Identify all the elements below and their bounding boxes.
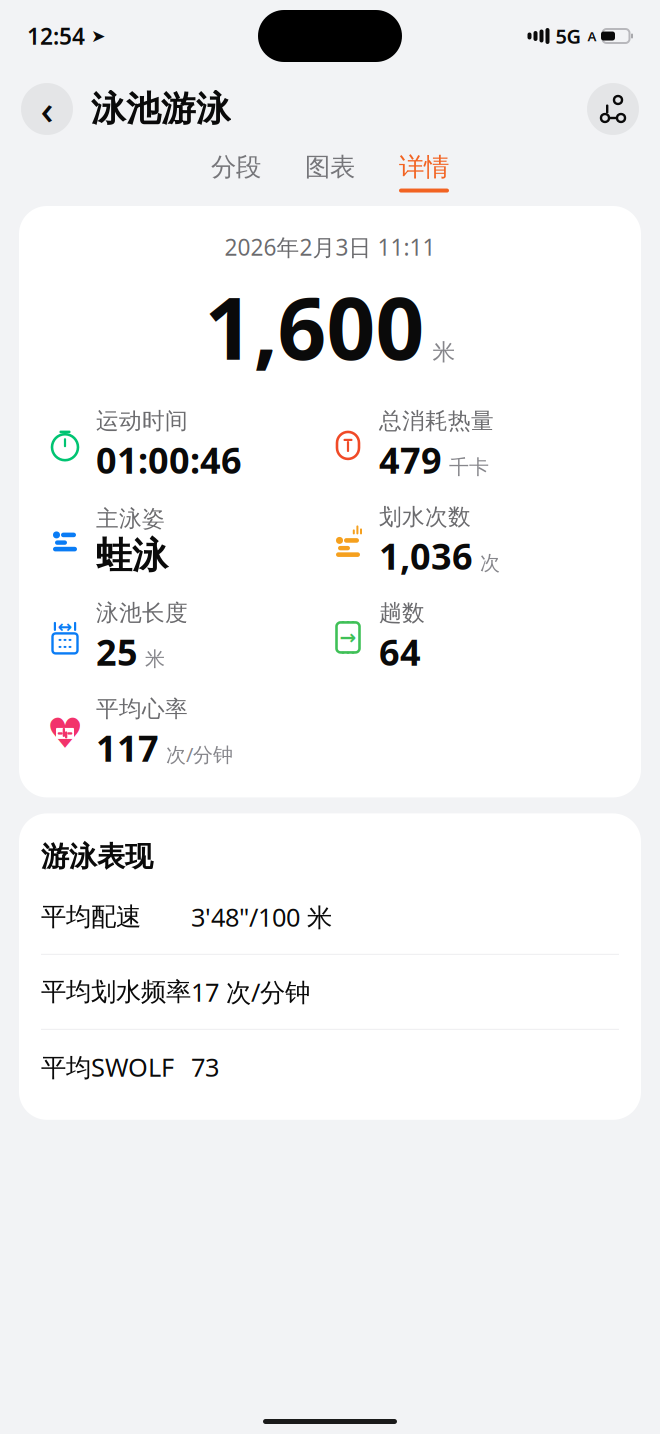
staticText: 趟数 — [379, 599, 425, 627]
button[interactable]: 分段 — [205, 151, 267, 192]
staticText: ➤ — [91, 26, 106, 46]
staticText: 117 — [96, 724, 159, 772]
staticText: 平均心率 — [96, 695, 188, 723]
staticText: 游泳表现 — [41, 839, 153, 874]
staticText: ↔ — [57, 617, 72, 636]
staticText: 12:54 — [27, 21, 85, 51]
staticText: 17 次/分钟 — [191, 975, 310, 1009]
button[interactable]: 分享 — [587, 83, 639, 135]
staticText: 64 — [379, 628, 421, 676]
staticText: 运动时间 — [96, 407, 188, 435]
staticText: 479 — [379, 436, 442, 484]
staticText: → — [339, 626, 356, 649]
staticText: 千卡 — [449, 455, 489, 479]
staticText: 平均SWOLF — [41, 1050, 174, 1084]
staticText: 1,036 — [379, 532, 473, 580]
staticText: ‹ — [40, 82, 53, 135]
staticText: 详情 — [399, 151, 449, 182]
staticText: 蛙泳 — [96, 534, 168, 578]
staticText: 主泳姿 — [96, 505, 165, 533]
staticText: 平均配速 — [41, 901, 141, 932]
staticText: 01:00:46 — [96, 436, 242, 484]
staticText: 泳池游泳 — [91, 88, 231, 130]
staticText: 米 — [145, 647, 165, 671]
staticText: 2026年2月3日 11:11 — [224, 232, 435, 262]
staticText: 图表 — [305, 151, 355, 182]
staticText: 米 — [432, 338, 455, 366]
staticText: 73 — [191, 1050, 219, 1084]
staticText: 次/分钟 — [166, 741, 233, 768]
button[interactable]: 图表 — [299, 151, 361, 192]
staticText: 泳池长度 — [96, 599, 188, 627]
staticText: ♥ — [46, 710, 83, 757]
staticText: 次 — [480, 551, 500, 575]
staticText: 总消耗热量 — [379, 407, 494, 435]
button[interactable]: 返回 — [21, 83, 73, 135]
staticText: 5G — [555, 23, 581, 49]
staticText: 1,600 — [204, 270, 424, 383]
staticText: 3'48"/100 米 — [191, 900, 332, 934]
staticText: A — [587, 27, 596, 45]
button[interactable]: 详情 — [393, 151, 455, 192]
staticText: 划水次数 — [379, 503, 471, 531]
staticText: 25 — [96, 628, 138, 676]
staticText: 平均划水频率 — [41, 976, 191, 1007]
staticText: 分段 — [211, 151, 261, 182]
